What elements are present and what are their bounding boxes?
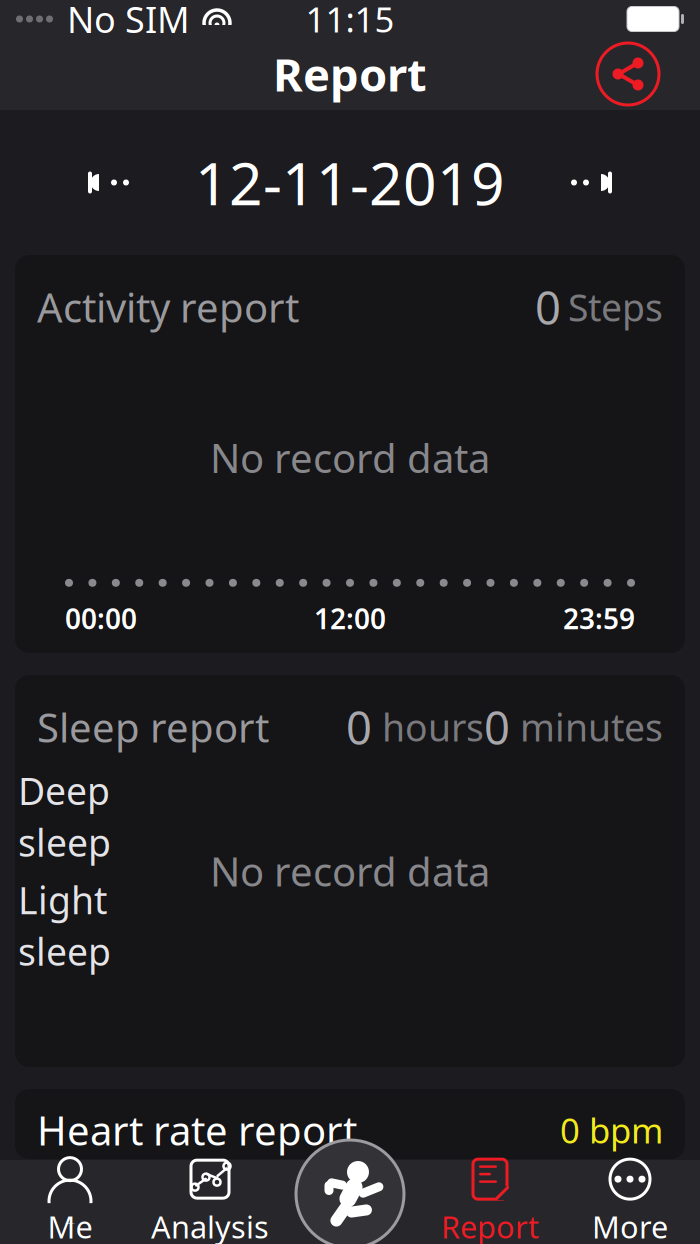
staticText: 0	[535, 277, 561, 337]
button[interactable]: Share	[592, 38, 664, 110]
button[interactable]: Report	[420, 1160, 560, 1244]
button[interactable]: Analysis	[140, 1160, 280, 1244]
staticText: 0 bpm	[560, 1107, 663, 1153]
staticText: Report	[441, 1206, 539, 1244]
staticText: 12-11-2019	[195, 143, 505, 221]
staticText: No SIM	[67, 0, 190, 43]
button[interactable]: Me	[0, 1160, 140, 1244]
staticText: Activity report	[37, 280, 299, 334]
button[interactable]: Next day	[534, 147, 654, 217]
staticText: 12:00	[314, 600, 386, 637]
staticText: Analysis	[151, 1206, 269, 1244]
staticText: 00:00	[65, 600, 137, 637]
staticText: Sleep report	[37, 700, 269, 754]
button[interactable]: Previous day	[46, 147, 166, 217]
staticText: Report	[273, 44, 427, 104]
button[interactable]: More	[560, 1160, 700, 1244]
staticText: Steps	[568, 282, 663, 332]
staticText: 11:15	[305, 0, 394, 42]
staticText: No record data	[210, 844, 490, 897]
staticText: minutes	[510, 702, 663, 752]
staticText: sleep	[18, 817, 111, 867]
staticText: 0	[484, 697, 510, 757]
staticText: Deep	[18, 766, 110, 815]
staticText: No record data	[210, 431, 490, 484]
staticText: Heart rate report	[37, 1103, 357, 1156]
staticText: More	[592, 1206, 668, 1244]
staticText: hours	[372, 702, 484, 752]
staticText: sleep	[18, 927, 111, 976]
button[interactable]: Start workout	[290, 1134, 410, 1244]
staticText: 23:59	[563, 600, 635, 637]
staticText: Me	[47, 1206, 92, 1244]
staticText: Light	[18, 875, 107, 925]
staticText: 0	[346, 697, 372, 757]
